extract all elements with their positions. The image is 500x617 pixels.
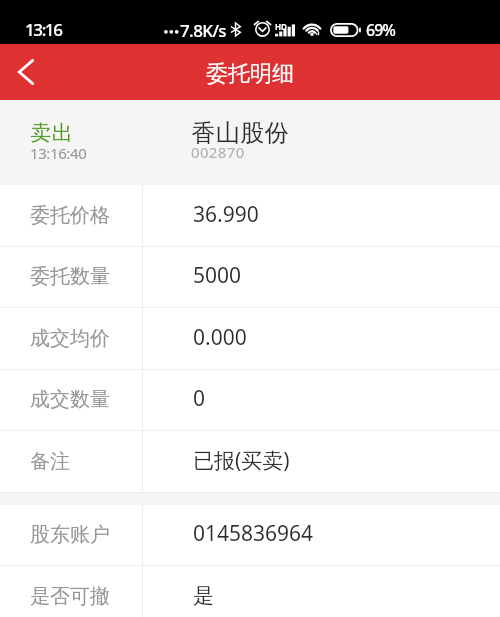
staticText: 委托价格	[30, 203, 110, 228]
staticText: HD	[275, 21, 287, 32]
staticText: 13:16	[25, 18, 62, 41]
staticText: 5000	[193, 261, 242, 290]
staticText: 002870	[191, 142, 245, 162]
button[interactable]: 成交数量	[0, 370, 500, 431]
staticText: 是	[193, 583, 214, 609]
button[interactable]: 委托数量	[0, 247, 500, 308]
staticText: 已报(买卖)	[193, 446, 290, 475]
staticText: 0	[193, 384, 206, 413]
staticText: 备注	[30, 449, 70, 474]
staticText: 7.8K/s	[180, 19, 227, 42]
staticText: 香山股份	[191, 118, 289, 148]
button[interactable]: 成交均价	[0, 308, 500, 370]
staticText: 成交均价	[30, 326, 110, 351]
staticText: 委托数量	[30, 264, 110, 289]
button[interactable]: 股东账户	[0, 505, 500, 566]
staticText: 0145836964	[193, 519, 314, 548]
button[interactable]: Back	[0, 44, 52, 100]
button[interactable]: 是否可撤	[0, 566, 500, 617]
staticText: 成交数量	[30, 387, 110, 412]
staticText: 是否可撤	[30, 584, 110, 609]
button[interactable]: 委托价格	[0, 185, 500, 247]
staticText: 卖出	[30, 120, 73, 146]
staticText: 0.000	[193, 323, 247, 352]
staticText: 36.990	[193, 200, 259, 229]
staticText: 69%	[366, 19, 395, 41]
staticText: 委托明细	[206, 60, 294, 88]
button[interactable]: 备注	[0, 431, 500, 493]
staticText: 股东账户	[30, 522, 110, 547]
staticText: 13:16:40	[30, 143, 87, 163]
